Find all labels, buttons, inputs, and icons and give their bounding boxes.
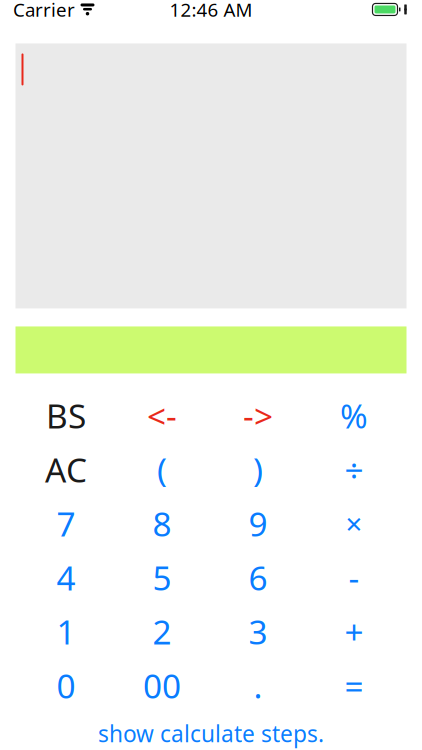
button[interactable]: . <box>210 658 306 712</box>
staticText: = <box>344 663 363 708</box>
button[interactable]: 3 <box>210 604 306 658</box>
staticText: BS <box>46 393 86 438</box>
button[interactable]: 8 <box>114 496 210 550</box>
staticText: % <box>340 393 368 438</box>
staticText: 7 <box>56 501 75 546</box>
staticText: 4 <box>56 555 75 600</box>
staticText: 6 <box>248 555 267 600</box>
button[interactable]: % <box>306 388 402 442</box>
staticText: + <box>344 609 363 654</box>
button[interactable]: -> <box>210 388 306 442</box>
staticText: 00 <box>143 663 181 708</box>
button[interactable]: ) <box>210 442 306 496</box>
button[interactable]: AC <box>18 442 114 496</box>
staticText: 2 <box>152 609 171 654</box>
staticText: -> <box>243 393 273 438</box>
staticText: 0 <box>56 663 75 708</box>
staticText: - <box>348 555 359 600</box>
staticText: AC <box>45 447 87 492</box>
staticText: show calculate steps. <box>98 718 324 748</box>
button[interactable]: 9 <box>210 496 306 550</box>
button[interactable]: 7 <box>18 496 114 550</box>
button[interactable]: 1 <box>18 604 114 658</box>
staticText: <- <box>147 393 177 438</box>
button[interactable]: = <box>306 658 402 712</box>
button[interactable]: ( <box>114 442 210 496</box>
staticText: 8 <box>152 501 171 546</box>
staticText: Carrier <box>13 0 75 22</box>
button[interactable]: 6 <box>210 550 306 604</box>
button[interactable]: 0 <box>18 658 114 712</box>
button[interactable]: + <box>306 604 402 658</box>
button[interactable]: - <box>306 550 402 604</box>
button[interactable]: BS <box>18 388 114 442</box>
staticText: . <box>253 663 262 708</box>
staticText: 3 <box>248 609 267 654</box>
staticText: 12:46 AM <box>169 0 252 22</box>
staticText: × <box>345 504 362 543</box>
button[interactable]: 5 <box>114 550 210 604</box>
staticText: 9 <box>248 501 267 546</box>
staticText: ( <box>157 447 167 492</box>
button[interactable]: 00 <box>114 658 210 712</box>
staticText: ) <box>253 447 263 492</box>
button[interactable]: <- <box>114 388 210 442</box>
staticText: 1 <box>56 609 75 654</box>
staticText: 5 <box>152 555 171 600</box>
staticText: ÷ <box>344 447 363 492</box>
button[interactable]: 4 <box>18 550 114 604</box>
button[interactable]: × <box>306 496 402 550</box>
button[interactable]: ÷ <box>306 442 402 496</box>
button[interactable]: 2 <box>114 604 210 658</box>
button[interactable]: show calculate steps. <box>0 712 422 750</box>
